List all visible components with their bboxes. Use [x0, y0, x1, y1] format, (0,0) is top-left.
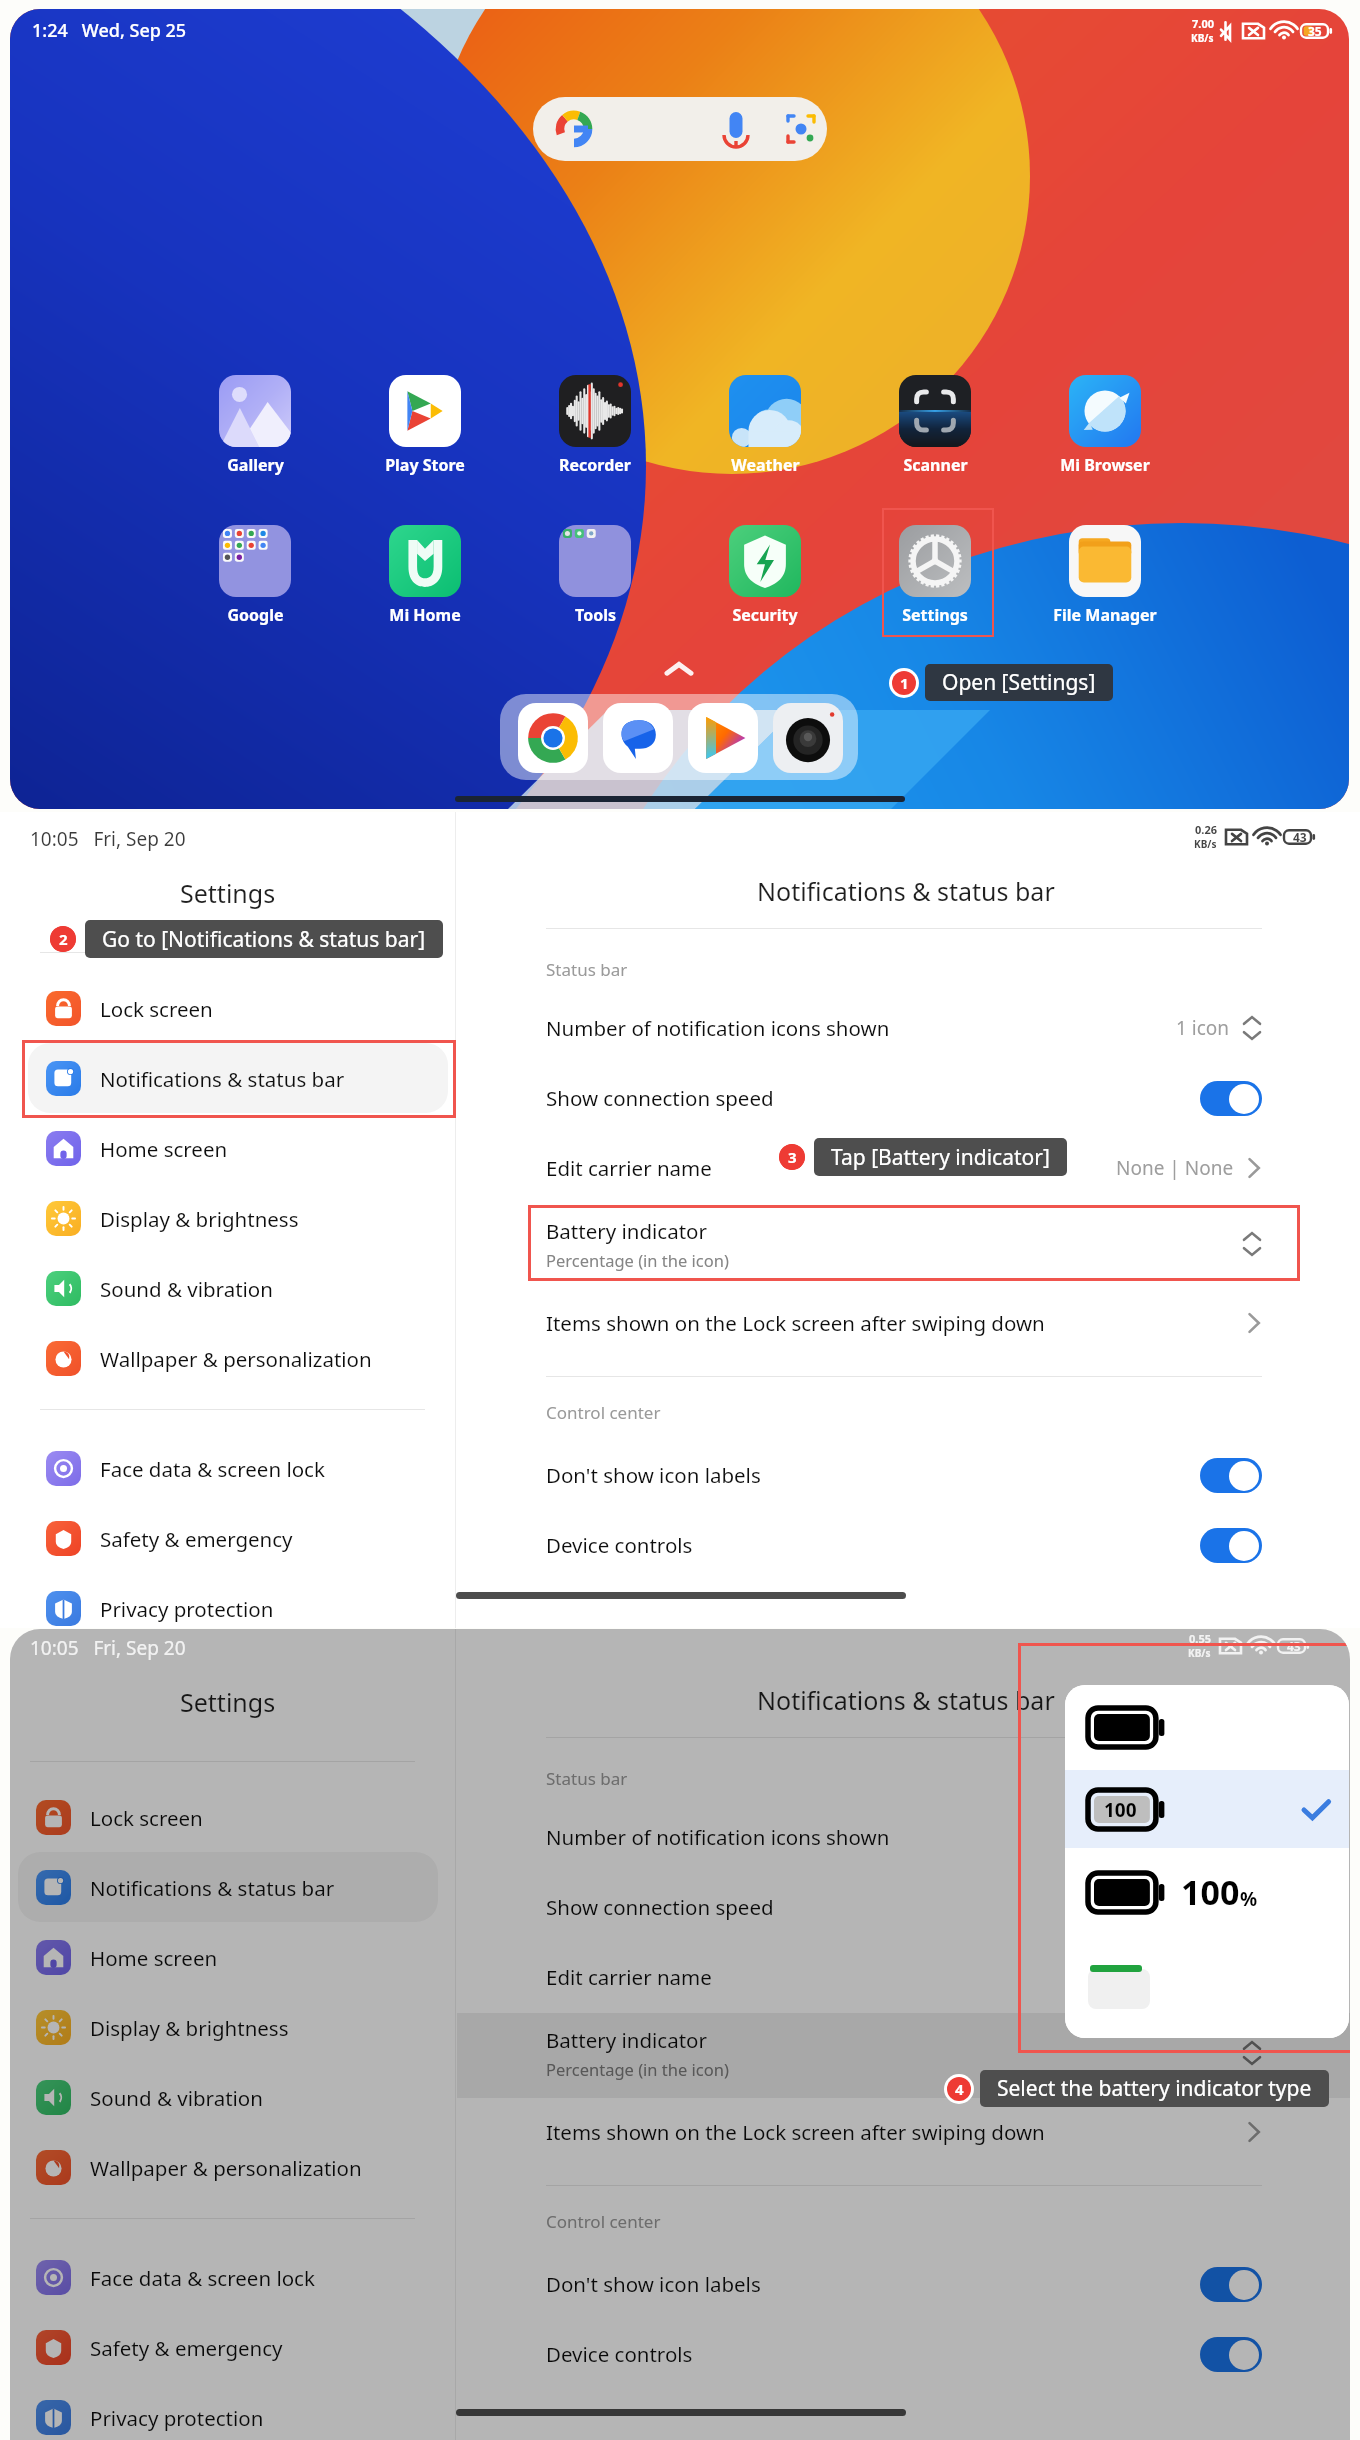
button[interactable]: Google — [195, 525, 315, 626]
button[interactable]: Number of notification icons shown — [546, 993, 1262, 1063]
button[interactable]: Security — [705, 525, 825, 626]
staticText: Tools — [575, 604, 616, 626]
staticText: Battery indicator — [546, 1217, 707, 1245]
button[interactable]: Privacy protection — [18, 2382, 438, 2440]
button[interactable]: Device controls — [546, 1510, 1262, 1580]
button[interactable]: Home screen — [18, 1922, 438, 1992]
staticText: 1 icon — [1176, 1824, 1230, 1850]
button[interactable]: Open app drawer — [659, 650, 699, 690]
button[interactable]: Edit carrier name — [546, 1942, 1262, 2012]
button[interactable]: Lock screen — [18, 1782, 438, 1852]
staticText: Edit carrier name — [546, 1154, 712, 1182]
staticText: Device controls — [546, 1531, 693, 1559]
button[interactable]: Mi Browser — [1045, 375, 1165, 476]
button[interactable]: Toggle Device controls — [1200, 2337, 1262, 2372]
button[interactable]: 100 — [1065, 1770, 1349, 1848]
button[interactable]: Google search — [533, 97, 827, 161]
button[interactable]: 100 — [1065, 1848, 1349, 1935]
button[interactable]: Recorder — [535, 375, 655, 476]
button[interactable]: Show connection speed — [546, 1872, 1262, 1942]
staticText: Weather — [731, 454, 800, 476]
staticText: Notifications & status bar — [757, 1683, 1055, 1717]
button[interactable]: Battery indicator — [546, 1209, 1262, 1279]
staticText: Privacy protection — [90, 2404, 264, 2432]
staticText: 10:05 Fri, Sep 20 — [30, 1635, 186, 1661]
button[interactable]: Safety & emergency — [28, 1503, 448, 1573]
button[interactable]: Don't show icon labels — [546, 2249, 1262, 2319]
button[interactable]: Privacy protection — [28, 1573, 448, 1643]
button[interactable]: Face data & screen lock — [18, 2242, 438, 2312]
button[interactable]: Messages — [603, 703, 673, 773]
button[interactable]: Chrome — [518, 703, 588, 773]
button[interactable]: Tools — [535, 525, 655, 626]
button[interactable]: Play Store — [365, 375, 485, 476]
button[interactable]: Face data & screen lock — [28, 1433, 448, 1503]
staticText: Sound & vibration — [90, 2084, 263, 2112]
button[interactable]: Gallery — [195, 375, 315, 476]
button[interactable]: Don't show icon labels — [546, 1440, 1262, 1510]
staticText: Control center — [546, 2210, 661, 2233]
button[interactable]: Battery indicator — [546, 2018, 1262, 2088]
button[interactable]: Notifications & status bar — [18, 1852, 438, 1922]
staticText: Battery indicator — [546, 2026, 707, 2054]
button[interactable]: Settings — [875, 525, 995, 626]
staticText: 4 — [955, 2079, 964, 2099]
staticText: Items shown on the Lock screen after swi… — [546, 1309, 1045, 1337]
button[interactable]: Weather — [705, 375, 825, 476]
staticText: Edit carrier name — [546, 1963, 712, 1991]
button[interactable]: Wallpaper & personalization — [18, 2132, 438, 2202]
staticText: Don't show icon labels — [546, 1461, 761, 1489]
staticText: Wallpaper & personalization — [100, 1345, 372, 1373]
staticText: 35 — [1308, 23, 1322, 39]
button[interactable]: Home screen — [28, 1113, 448, 1183]
button[interactable]: Edit carrier name — [546, 1133, 1262, 1203]
button[interactable] — [1065, 1935, 1349, 2038]
button[interactable]: Number of notification icons shown — [546, 1802, 1262, 1872]
button[interactable]: Lock screen — [28, 973, 448, 1043]
button[interactable]: Items shown on the Lock screen after swi… — [546, 1288, 1262, 1358]
button[interactable]: Device controls — [546, 2319, 1262, 2389]
staticText: Items shown on the Lock screen after swi… — [546, 2118, 1045, 2146]
button[interactable]: Toggle Show connection speed — [1200, 1081, 1262, 1116]
button[interactable]: Toggle Don't show icon labels — [1200, 1458, 1262, 1493]
staticText: None | None — [1116, 1155, 1234, 1181]
staticText: Security — [732, 604, 798, 626]
staticText: Sound & vibration — [100, 1275, 273, 1303]
staticText: Settings — [180, 876, 276, 910]
staticText: 100 — [1104, 1797, 1137, 1823]
button[interactable]: Toggle Don't show icon labels — [1200, 2267, 1262, 2302]
button[interactable]: Wallpaper & personalization — [28, 1323, 448, 1393]
button[interactable]: Show connection speed — [546, 1063, 1262, 1133]
button[interactable]: Sound & vibration — [28, 1253, 448, 1323]
staticText: Lock screen — [90, 1804, 203, 1832]
staticText: Show connection speed — [546, 1084, 774, 1112]
button[interactable]: Display & brightness — [18, 1992, 438, 2062]
button[interactable]: Toggle Show connection speed — [1200, 1890, 1262, 1925]
button[interactable] — [1065, 1685, 1349, 1770]
staticText: 43 — [1287, 1638, 1301, 1654]
staticText: Don't show icon labels — [546, 2270, 761, 2298]
staticText: Tap [Battery indicator] — [831, 1143, 1050, 1172]
staticText: Select the battery indicator type — [997, 2074, 1312, 2103]
staticText: Settings — [902, 604, 968, 626]
staticText: 1 — [900, 673, 909, 693]
staticText: 43 — [1293, 829, 1307, 845]
button[interactable]: Sound & vibration — [18, 2062, 438, 2132]
button[interactable]: Items shown on the Lock screen after swi… — [546, 2097, 1262, 2167]
button[interactable]: Scanner — [875, 375, 995, 476]
button[interactable]: Notifications & status bar — [28, 1043, 448, 1113]
staticText: 0.55 — [1189, 1631, 1211, 1646]
button[interactable]: Camera — [773, 703, 843, 773]
button[interactable]: Safety & emergency — [18, 2312, 438, 2382]
staticText: 7.00 — [1192, 16, 1214, 31]
staticText: Settings — [180, 1685, 276, 1719]
button[interactable]: File Manager — [1045, 525, 1165, 626]
staticText: KB/s — [1194, 837, 1217, 851]
staticText: Safety & emergency — [90, 2334, 283, 2362]
button[interactable]: Display & brightness — [28, 1183, 448, 1253]
staticText: Show connection speed — [546, 1893, 774, 1921]
button[interactable]: Mi Home — [365, 525, 485, 626]
button[interactable]: Toggle Device controls — [1200, 1528, 1262, 1563]
staticText: Scanner — [903, 454, 968, 476]
button[interactable]: Mi Video — [688, 703, 758, 773]
